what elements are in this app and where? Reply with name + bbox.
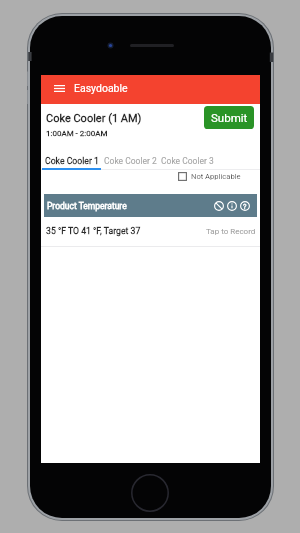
- button[interactable]: Coke Cooler 3: [158, 152, 217, 170]
- button[interactable]: Not Applicable: [177, 170, 242, 183]
- staticText: 1:00AM - 2:00AM: [46, 129, 108, 138]
- button[interactable]: 35 °F TO 41 °F, Target 37: [41, 218, 260, 248]
- staticText: 35 °F TO 41 °F, Target 37: [46, 226, 141, 236]
- staticText: Not Applicable: [191, 172, 241, 181]
- staticText: Submit: [211, 111, 248, 124]
- staticText: Tap to Record: [206, 227, 256, 236]
- button[interactable]: Coke Cooler 1: [42, 152, 102, 170]
- staticText: ?: [243, 202, 247, 210]
- button[interactable]: Open navigation menu: [48, 78, 69, 99]
- button[interactable]: Coke Cooler 2: [101, 152, 160, 170]
- staticText: Coke Cooler 3: [161, 156, 214, 166]
- button[interactable]: Help: [238, 199, 252, 213]
- staticText: Coke Cooler (1 AM): [46, 112, 142, 125]
- button[interactable]: Information: [225, 199, 239, 213]
- button[interactable]: Submit: [204, 106, 254, 129]
- staticText: Coke Cooler 1: [45, 156, 99, 166]
- staticText: Coke Cooler 2: [104, 156, 157, 166]
- staticText: Easydoable: [74, 82, 128, 94]
- staticText: Product Temperature: [47, 201, 127, 211]
- button[interactable]: Not applicable: [212, 199, 226, 213]
